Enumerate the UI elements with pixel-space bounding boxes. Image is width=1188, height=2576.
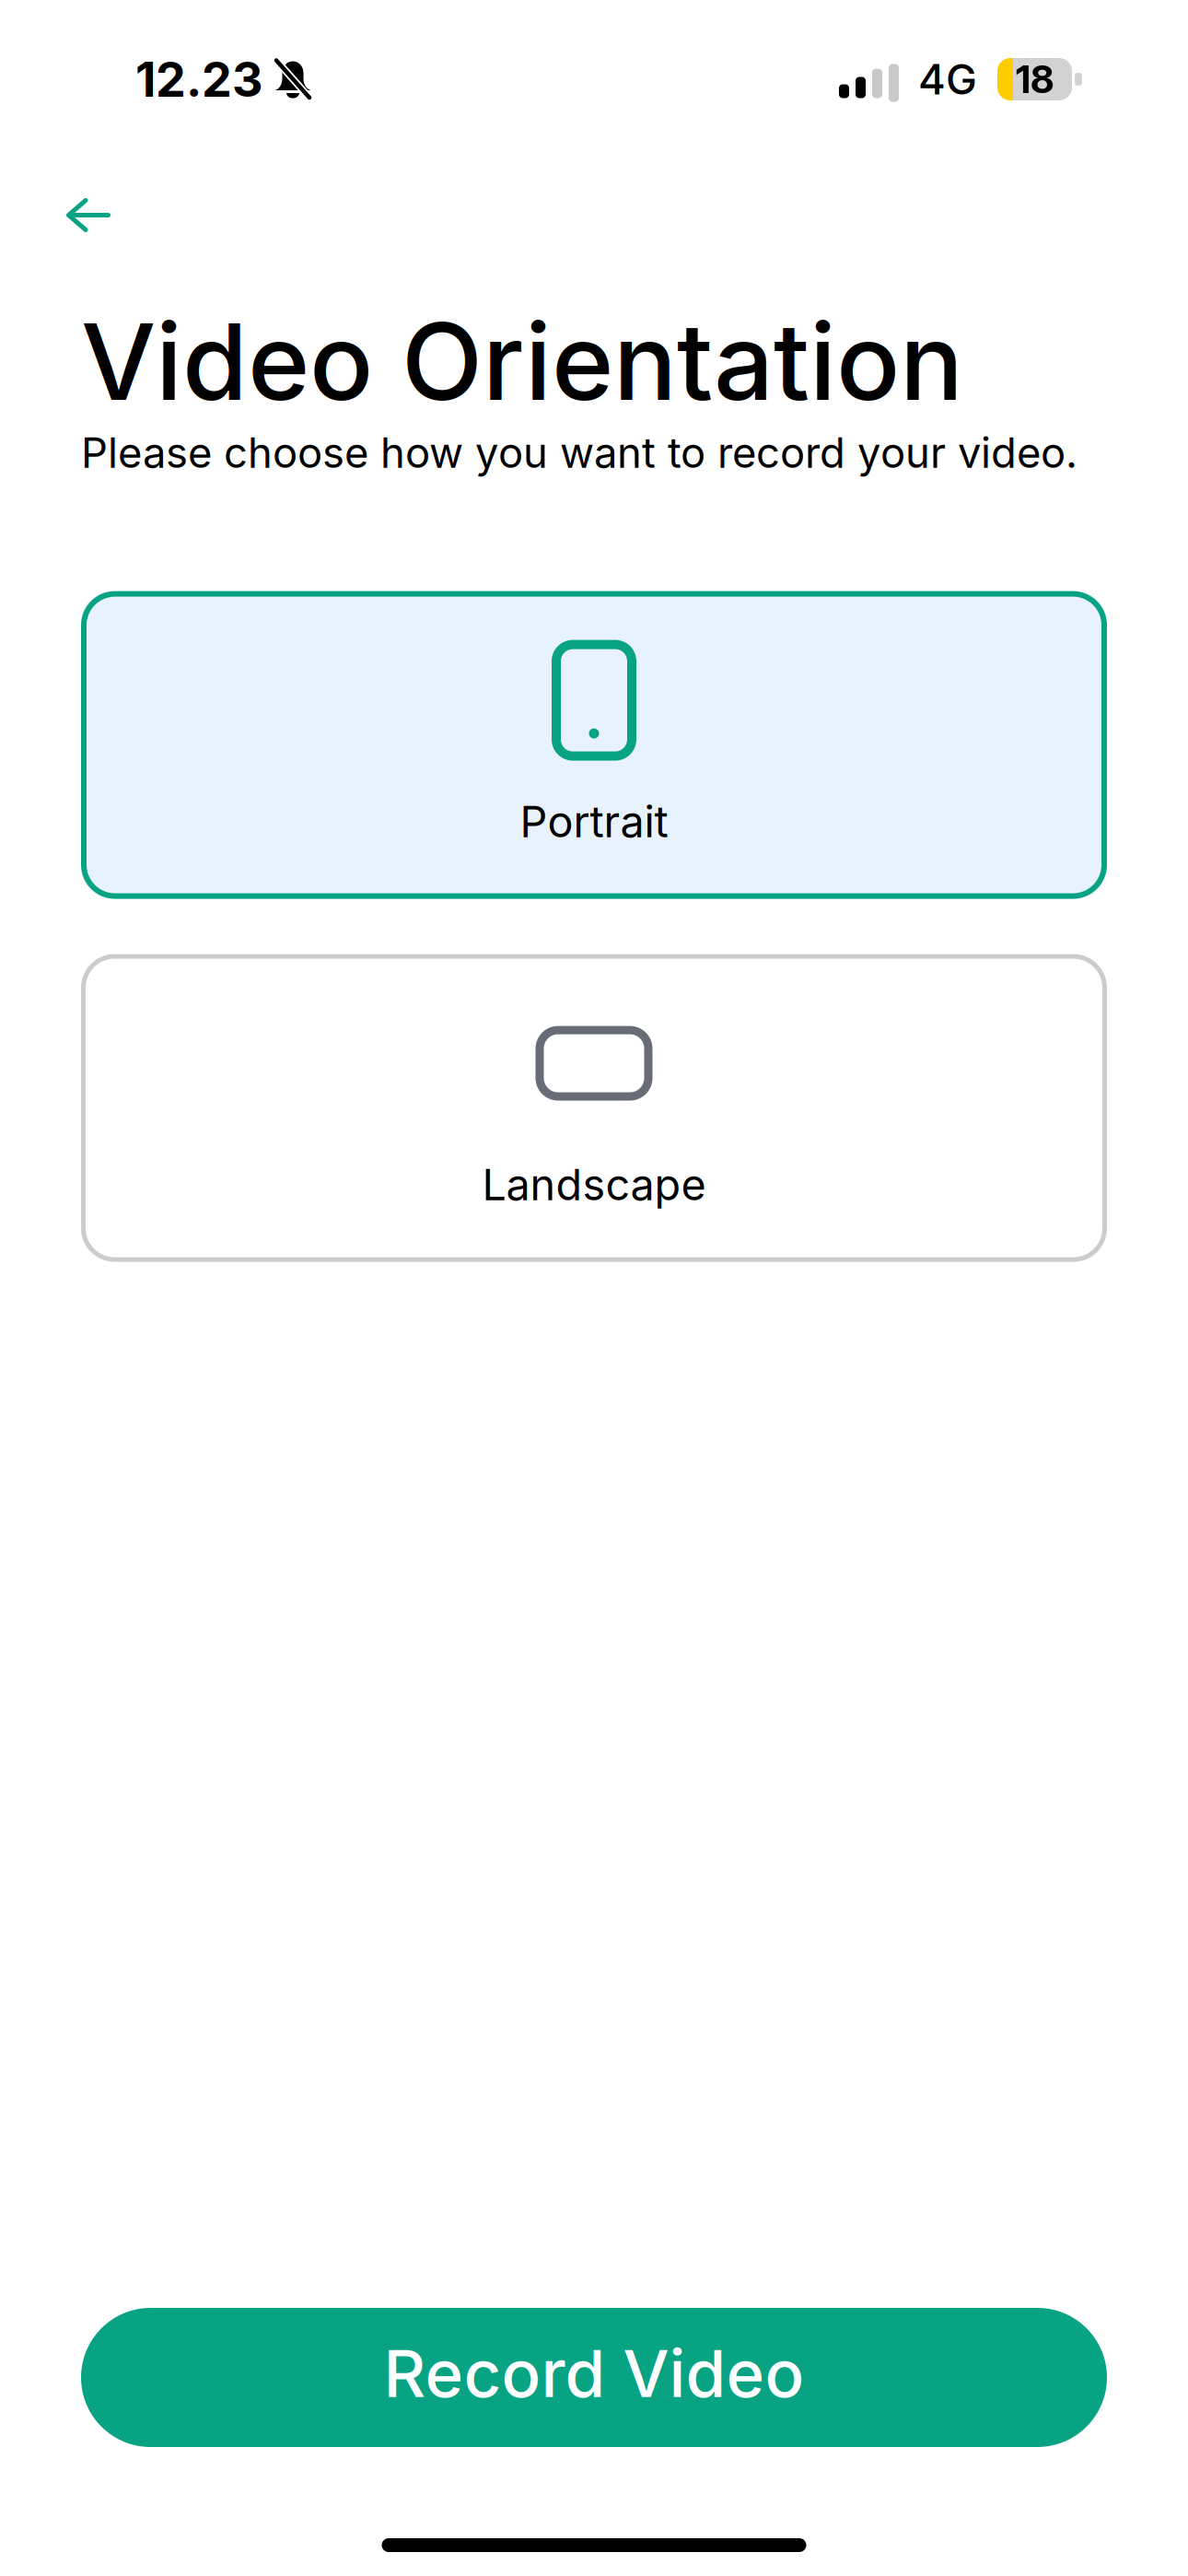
staticText: 4G [918, 54, 977, 105]
staticText: 12.23 [135, 50, 263, 108]
button[interactable]: Back [0, 178, 147, 252]
staticText: Landscape [482, 1159, 706, 1211]
button[interactable]: Record Video [81, 2308, 1107, 2447]
staticText: Record Video [384, 2334, 804, 2413]
staticText: Video Orientation [81, 298, 963, 425]
button[interactable]: Portrait [81, 591, 1107, 899]
staticText: 18 [1016, 56, 1054, 102]
staticText: Portrait [520, 796, 668, 848]
staticText: Please choose how you want to record you… [81, 427, 1077, 478]
button[interactable]: Landscape [81, 954, 1107, 1262]
